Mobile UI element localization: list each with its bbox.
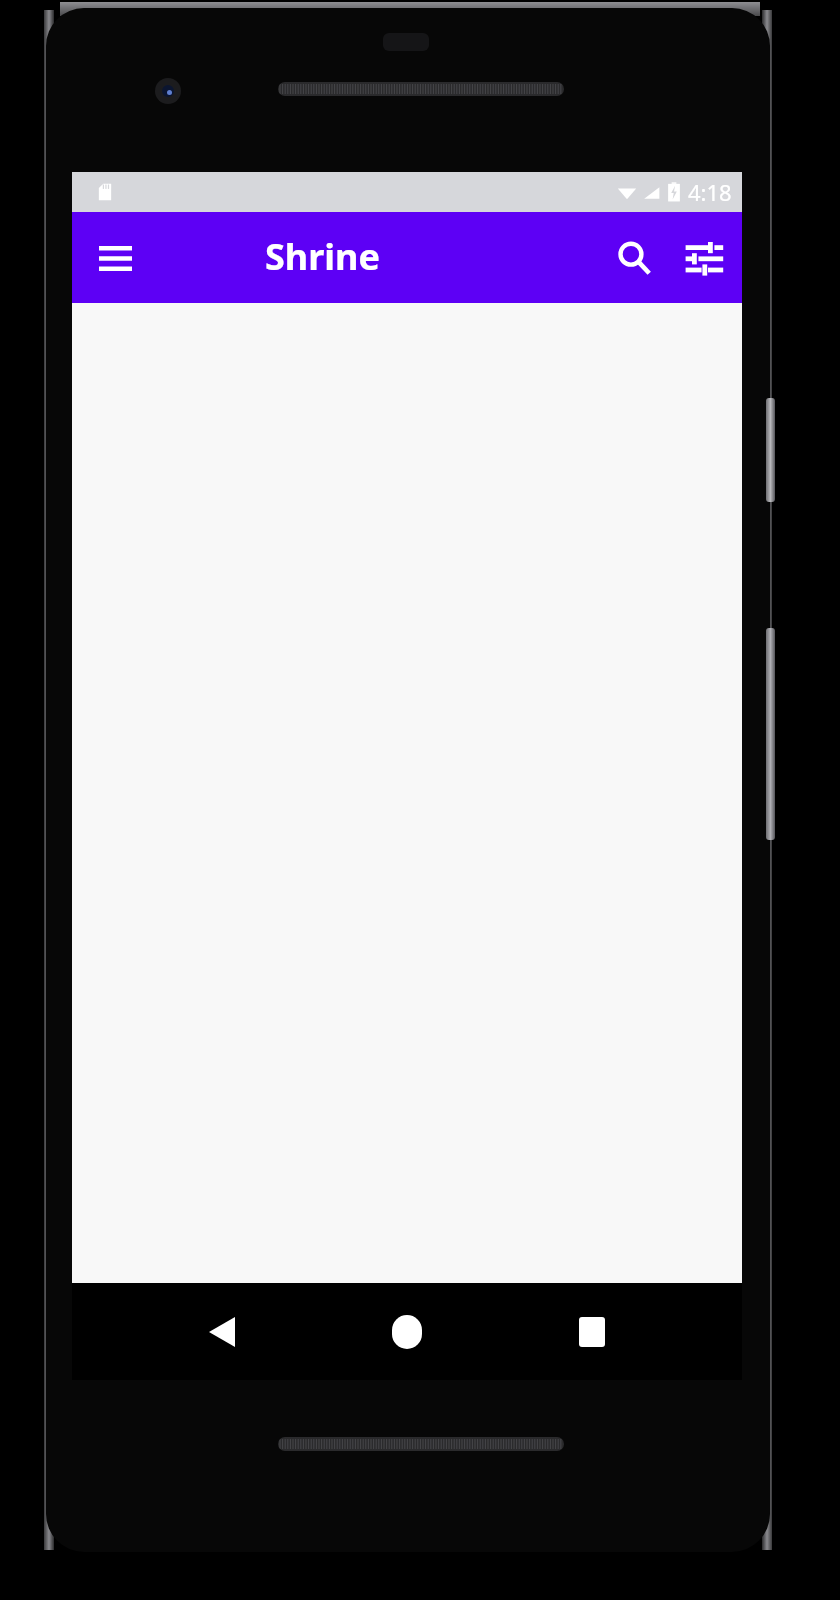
button[interactable]: Open navigation menu (87, 230, 143, 286)
button[interactable]: Home (375, 1300, 439, 1364)
button[interactable]: Recent apps (560, 1300, 624, 1364)
button[interactable]: Back (190, 1300, 254, 1364)
staticText: Shrine (265, 232, 380, 281)
staticText: 4:18 (688, 177, 732, 207)
button[interactable]: Filter options (676, 230, 732, 286)
button[interactable]: Search (606, 230, 662, 286)
